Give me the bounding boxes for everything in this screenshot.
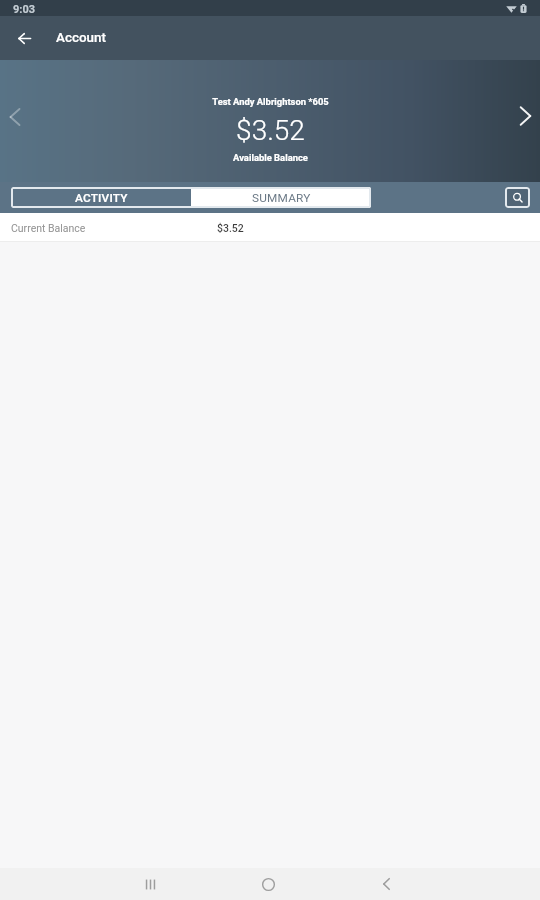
staticText: 9:03 [13,3,36,16]
button[interactable]: Back [11,25,37,51]
button[interactable]: Current Balance [0,213,540,242]
staticText: Test Andy Albrightson *605 [212,96,329,107]
button[interactable]: ACTIVITY [11,187,191,208]
staticText: Available Balance [233,152,308,163]
button[interactable]: Search [505,187,530,208]
staticText: Account [56,30,106,46]
staticText: Current Balance [11,222,86,234]
button[interactable]: Previous account [0,102,30,132]
button[interactable]: Recents [130,868,170,900]
button[interactable]: Back [366,868,406,900]
staticText: $3.52 [217,222,244,234]
button[interactable]: Home [248,868,288,900]
staticText: $3.52 [236,114,305,147]
button[interactable]: SUMMARY [191,187,371,208]
button[interactable]: Next account [509,100,540,132]
staticText: SUMMARY [252,191,311,205]
staticText: ACTIVITY [75,191,128,205]
